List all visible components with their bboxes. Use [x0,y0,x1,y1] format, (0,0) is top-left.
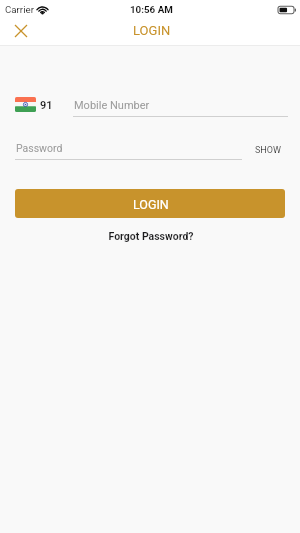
button[interactable]: Close [8,18,33,43]
staticText: 91 [40,99,53,112]
staticText: LOGIN [133,23,171,38]
staticText: 10:56 AM [130,4,173,15]
staticText: Mobile Number [74,99,150,112]
staticText: Forgot Password? [108,230,194,242]
staticText: Carrier [5,4,34,15]
staticText: SHOW [255,145,281,156]
button[interactable]: 91 [15,92,53,116]
button[interactable]: SHOW [250,141,286,160]
staticText: LOGIN [133,197,169,212]
button[interactable]: LOGIN [15,189,285,218]
button[interactable]: Forgot Password? [0,228,300,244]
staticText: Password [16,142,63,154]
